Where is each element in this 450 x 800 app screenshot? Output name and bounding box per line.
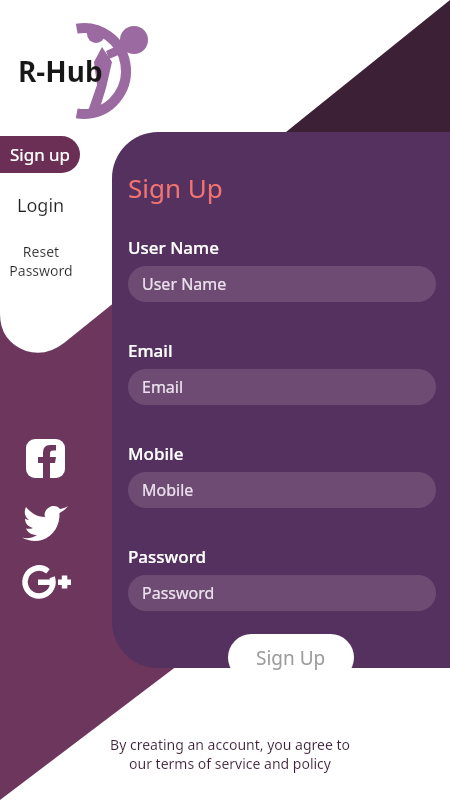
staticText: User Name [128,236,219,259]
button[interactable]: Email [128,369,436,405]
button[interactable]: Login [0,190,82,220]
staticText: Mobile [142,479,194,501]
button[interactable]: Twitter [22,500,68,538]
staticText: Sign up [10,143,71,166]
staticText: Password [142,582,215,604]
staticText: R-Hub [18,52,103,90]
staticText: Email [142,376,184,398]
button[interactable]: Facebook [26,439,65,478]
staticText: Sign Up [256,645,326,671]
button[interactable]: Google Plus [22,562,72,602]
staticText: Email [128,339,173,362]
button[interactable]: Reset Password [0,240,82,282]
staticText: Login [17,193,65,218]
button[interactable]: Mobile [128,472,436,508]
button[interactable]: Sign up [0,136,80,173]
staticText: Sign Up [128,170,223,205]
button[interactable]: Password [128,575,436,611]
staticText: User Name [142,273,227,295]
button[interactable]: Sign Up [228,634,354,681]
button[interactable]: User Name [128,266,436,302]
staticText: Password [128,545,207,568]
staticText: Reset Password [9,242,73,280]
staticText: Mobile [128,442,184,465]
staticText: By creating an account, you agree to our… [85,735,375,773]
